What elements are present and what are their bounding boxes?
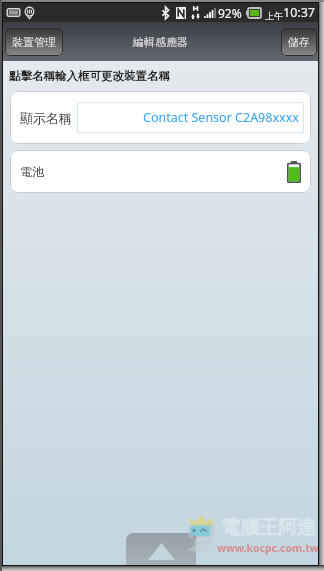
- staticText: 電池: [20, 164, 44, 179]
- staticText: 裝置管理: [12, 35, 56, 49]
- staticText: 92%: [218, 5, 242, 21]
- staticText: 10:37: [283, 4, 315, 21]
- button[interactable]: 儲存: [281, 28, 317, 56]
- staticText: www.kocpc.com.tw: [217, 541, 319, 555]
- button[interactable]: Expand navigation: [126, 533, 196, 565]
- staticText: 編輯感應器: [133, 35, 188, 49]
- button[interactable]: 顯示名稱: [10, 91, 311, 144]
- staticText: 儲存: [288, 35, 310, 49]
- button[interactable]: 電池: [10, 150, 311, 193]
- staticText: 點擊名稱輸入框可更改裝置名稱: [9, 69, 170, 83]
- staticText: 電腦王阿達: [221, 516, 316, 540]
- staticText: 顯示名稱: [20, 110, 72, 126]
- staticText: 上午: [265, 10, 283, 21]
- button[interactable]: Contact Sensor C2A98xxxx: [77, 102, 304, 133]
- staticText: Contact Sensor C2A98xxxx: [143, 109, 299, 126]
- button[interactable]: 裝置管理: [5, 28, 63, 56]
